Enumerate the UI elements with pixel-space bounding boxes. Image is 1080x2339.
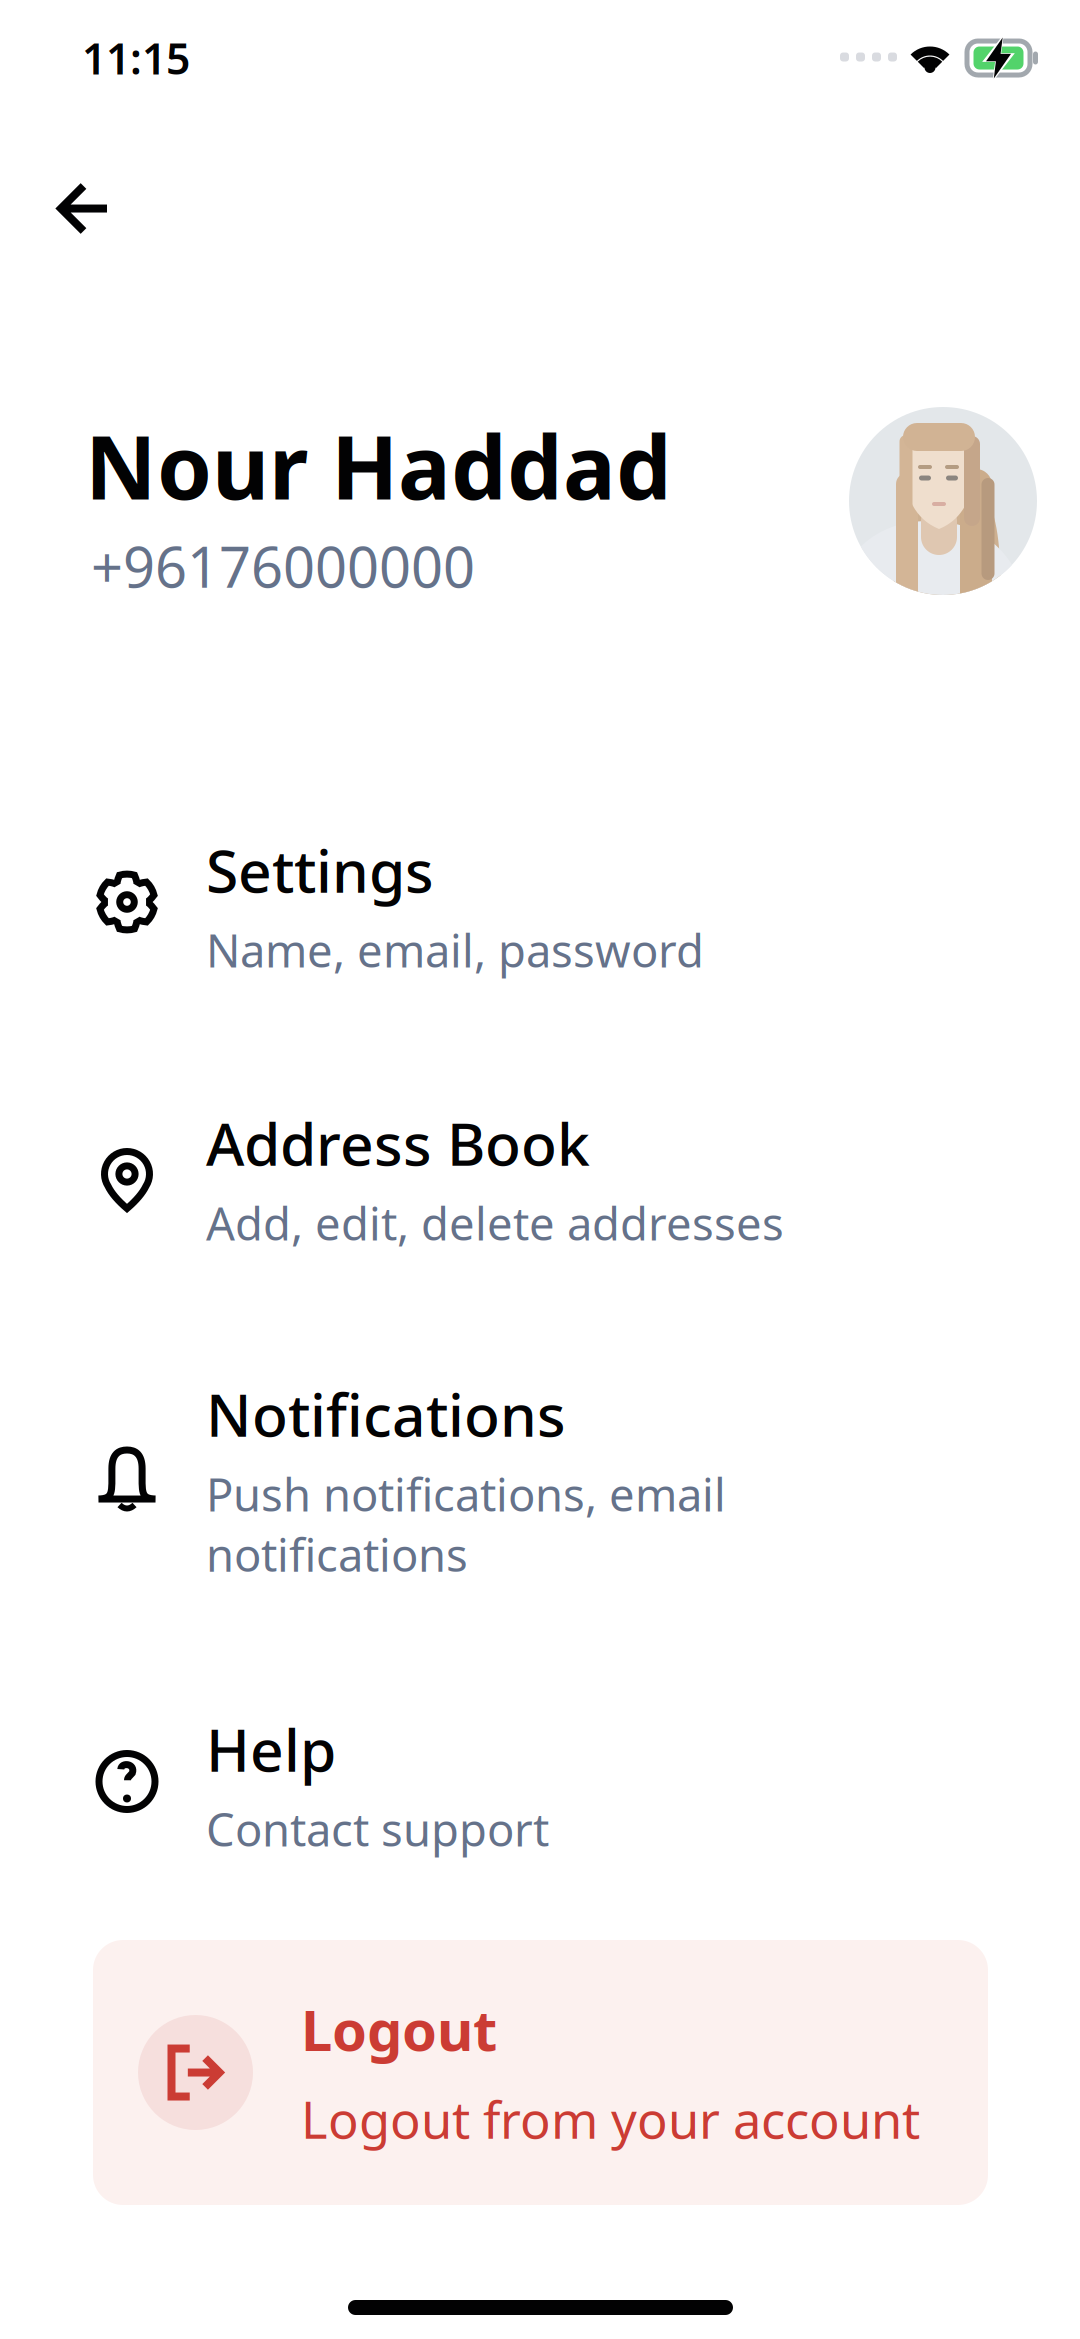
button[interactable]: Notifications: [0, 1375, 1080, 1543]
staticText: Address Book: [206, 1104, 590, 1182]
button[interactable]: Logout: [93, 1940, 988, 2205]
staticText: Logout from your account: [301, 2085, 920, 2153]
button[interactable]: Back: [33, 158, 135, 259]
staticText: Contact support: [206, 1799, 549, 1859]
staticText: 11:15: [82, 30, 190, 86]
staticText: Logout: [301, 1992, 497, 2066]
staticText: Notifications: [206, 1375, 566, 1453]
staticText: Push notifications, email notifications: [206, 1464, 726, 1584]
button[interactable]: Address Book: [0, 1104, 1080, 1242]
button[interactable]: Help: [0, 1710, 1080, 1843]
button[interactable]: Settings: [0, 831, 1080, 966]
staticText: +96176000000: [91, 529, 475, 603]
staticText: Add, edit, delete addresses: [206, 1193, 784, 1253]
staticText: Help: [206, 1710, 336, 1788]
staticText: Nour Haddad: [85, 407, 672, 524]
staticText: Settings: [206, 831, 434, 909]
staticText: Name, email, password: [206, 920, 704, 980]
